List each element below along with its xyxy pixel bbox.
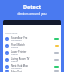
staticText: Soundbar Pro: [11, 36, 28, 39]
button[interactable]: Soundbar Pro: [3, 35, 61, 42]
button[interactable]: Living Room TV: [3, 56, 61, 63]
staticText: Connected: [11, 67, 22, 70]
staticText: Laser Printer: [11, 50, 27, 53]
staticText: Living Room TV: [11, 57, 30, 60]
staticText: Echo Dot: [11, 70, 22, 72]
staticText: devices around you: [0, 12, 64, 16]
staticText: Offline: [11, 60, 18, 63]
button[interactable]: Echo Dot: [3, 70, 61, 72]
button[interactable]: Scan for devices: [3, 20, 61, 25]
staticText: Pairing: [11, 46, 18, 49]
staticText: Nest Hub Max: [11, 64, 28, 67]
staticText: Detect: [0, 3, 64, 10]
button[interactable]: Pixel Watch: [3, 42, 61, 49]
button[interactable]: Nest Hub Max: [3, 63, 61, 70]
staticText: AVAILABLE: [5, 31, 18, 34]
button[interactable]: Laser Printer: [3, 49, 61, 56]
staticText: Pixel Watch: [11, 43, 25, 46]
staticText: Offline: [11, 53, 18, 56]
staticText: Connected: [11, 39, 22, 42]
